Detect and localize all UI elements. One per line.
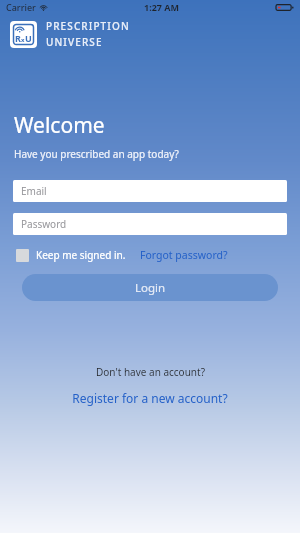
staticText: Email (21, 184, 47, 198)
staticText: Password (21, 217, 67, 231)
staticText: PRESCRIPTION (46, 19, 130, 33)
staticText: U (25, 32, 32, 44)
staticText: Welcome (14, 111, 105, 140)
staticText: Don't have an account? (96, 365, 205, 379)
button[interactable]: Keep me signed in. (16, 244, 126, 266)
staticText: 1:27 AM (144, 1, 180, 13)
staticText: x (21, 36, 25, 44)
other: Prescription Universe logo (10, 21, 37, 48)
staticText: UNIVERSE (46, 35, 103, 49)
button[interactable]: Forgot password? (140, 244, 228, 266)
staticText: Carrier (6, 1, 36, 13)
button[interactable]: Login (22, 274, 278, 301)
button[interactable]: Register for a new account? (66, 387, 234, 409)
button[interactable]: Password (13, 213, 287, 235)
staticText: Have you prescribed an app today? (14, 147, 179, 161)
staticText: Login (135, 280, 166, 296)
staticText: Forgot password? (140, 248, 228, 262)
staticText: Keep me signed in. (36, 248, 126, 262)
staticText: Register for a new account? (72, 390, 228, 406)
staticText: R (15, 32, 21, 44)
button[interactable]: Email (13, 180, 287, 202)
